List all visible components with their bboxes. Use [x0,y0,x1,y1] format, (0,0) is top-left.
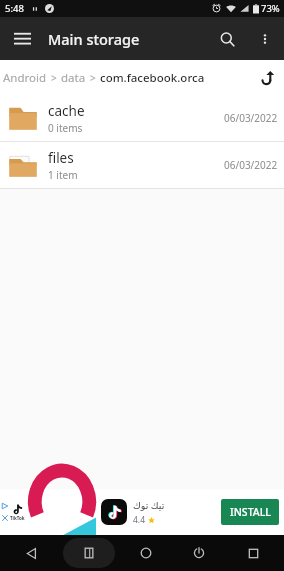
staticText: > [51,71,57,85]
button[interactable]: INSTALL [221,499,279,525]
staticText: تيك توك [133,499,165,512]
staticText: files [48,149,74,167]
button[interactable]: Recent apps [231,536,275,570]
staticText: 5:48 [5,2,24,15]
staticText: > [90,71,96,85]
staticText: Android [3,70,47,86]
staticText: data [61,70,86,86]
staticText: Main storage [48,29,140,49]
button[interactable]: Home [124,536,168,570]
staticText: 1 item [48,168,78,182]
button[interactable]: Open navigation drawer [0,17,44,60]
staticText: 06/03/2022 [224,111,278,125]
staticText: com.facebook.orca [100,70,205,86]
staticText: 4.4 [133,514,146,526]
staticText: 0 items [48,121,83,135]
button[interactable]: Android [3,70,47,86]
button[interactable]: Back [9,536,53,570]
staticText: cache [48,102,85,120]
button[interactable]: Search [206,18,248,60]
button[interactable]: data [61,70,86,86]
button[interactable]: TikTok [0,489,284,535]
staticText: TikTok [10,515,25,521]
button[interactable]: Go up one level [252,62,284,94]
button[interactable]: com.facebook.orca [100,70,205,86]
button[interactable]: More options [248,22,282,56]
button[interactable]: Screenshot [63,538,115,568]
staticText: INSTALL [230,505,271,519]
staticText: 73% [261,2,280,15]
staticText: 06/03/2022 [224,158,278,172]
button[interactable]: Power [177,536,221,570]
button[interactable]: cache [0,95,284,141]
button[interactable]: files [0,142,284,188]
